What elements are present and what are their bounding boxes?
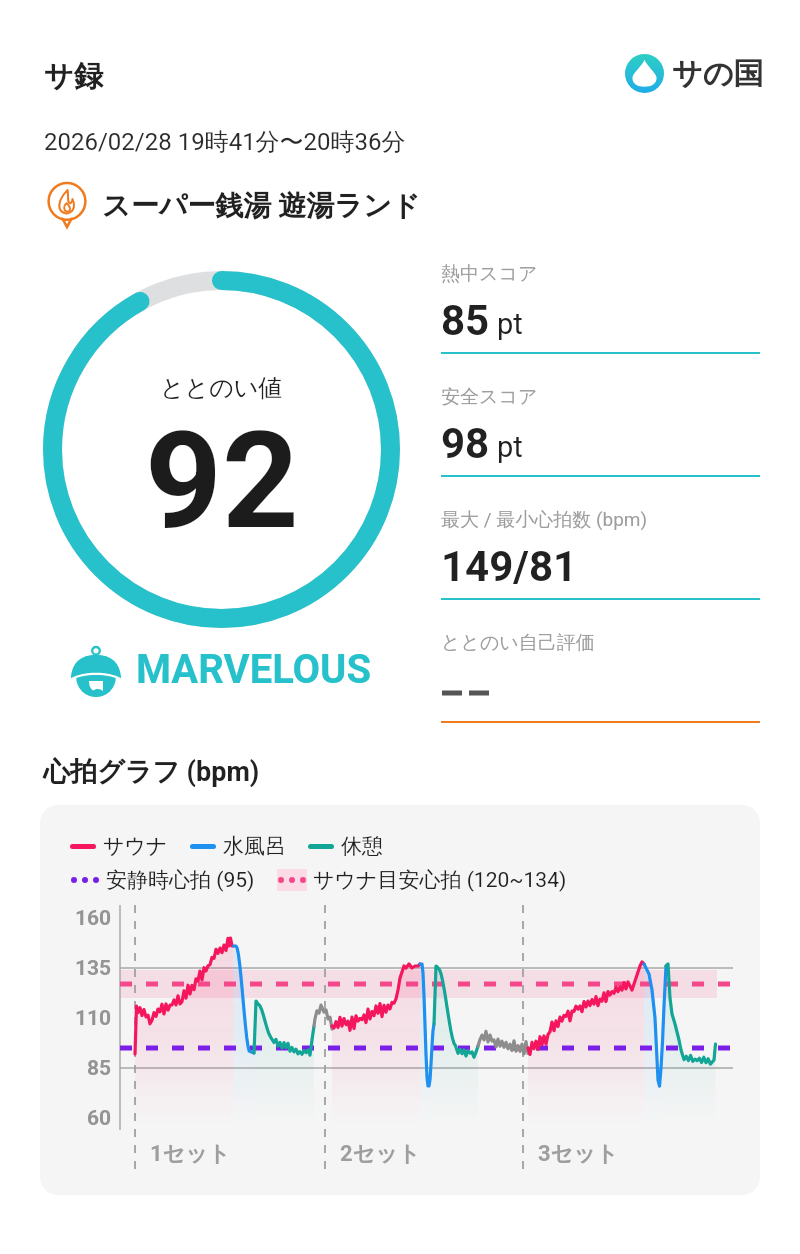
button[interactable]: 最大 / 最小心拍数 (bpm)	[441, 502, 760, 600]
staticText: pt	[497, 307, 523, 341]
staticText: 149/81	[441, 542, 578, 591]
staticText: スーパー銭湯 遊湯ランド	[102, 188, 421, 223]
staticText: 92	[145, 403, 299, 560]
staticText: サ録	[44, 58, 103, 95]
staticText: 心拍グラフ (bpm)	[43, 755, 260, 789]
staticText: 水風呂	[223, 833, 286, 859]
staticText: 135	[75, 956, 112, 981]
staticText: ととのい値	[160, 373, 283, 403]
staticText: 85	[441, 296, 490, 345]
staticText: 2026/02/28 19時41分〜20時36分	[44, 127, 406, 157]
button[interactable]: ととのい値	[43, 271, 400, 628]
staticText: サウナ	[103, 833, 168, 859]
button[interactable]: サの国 home	[625, 52, 764, 95]
staticText: 1セット	[150, 1140, 231, 1168]
staticText: 110	[75, 1006, 112, 1031]
button[interactable]: MARVELOUS	[64, 639, 380, 699]
staticText: ととのい自己評価	[441, 631, 595, 655]
staticText: サウナ目安心拍 (120~134)	[313, 867, 567, 893]
staticText: 160	[75, 906, 112, 931]
button[interactable]: スーパー銭湯 遊湯ランド	[40, 180, 429, 230]
button[interactable]: 安全スコア	[441, 379, 760, 477]
staticText: 60	[87, 1106, 112, 1131]
staticText: 熱中スコア	[441, 262, 538, 286]
staticText: 3セット	[538, 1140, 619, 1168]
staticText: 最大 / 最小心拍数 (bpm)	[441, 508, 648, 532]
button[interactable]: 熱中スコア	[441, 256, 760, 354]
staticText: 85	[87, 1056, 112, 1081]
staticText: pt	[497, 430, 523, 464]
button[interactable]: ととのい自己評価	[441, 625, 760, 723]
staticText: MARVELOUS	[136, 646, 372, 693]
staticText: 98	[441, 419, 490, 468]
staticText: サの国	[672, 55, 764, 93]
staticText: 2セット	[340, 1140, 421, 1168]
staticText: 安静時心拍 (95)	[106, 867, 255, 893]
staticText: 安全スコア	[441, 385, 538, 409]
staticText: 休憩	[341, 833, 383, 859]
